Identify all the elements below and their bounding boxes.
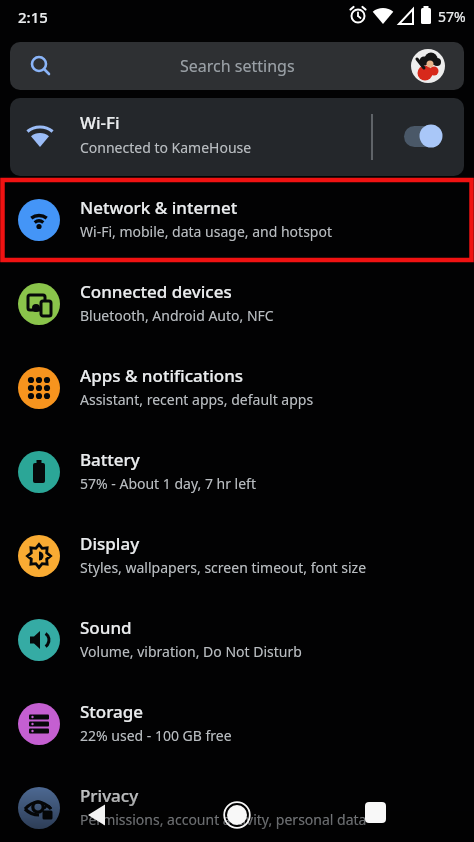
button[interactable]: Apps & notifications [0, 346, 474, 430]
staticText: Apps & notifications [80, 364, 244, 387]
staticText: Connected devices [80, 280, 232, 303]
button[interactable]: Wi-Fi [10, 98, 464, 176]
staticText: 57% - About 1 day, 7 hr left [80, 474, 256, 493]
button[interactable] [197, 785, 277, 842]
staticText: Search settings [180, 55, 295, 77]
staticText: Storage [80, 700, 144, 723]
staticText: Volume, vibration, Do Not Disturb [80, 642, 302, 661]
staticText: Assistant, recent apps, default apps [80, 390, 314, 409]
staticText: Battery [80, 448, 140, 471]
button[interactable] [60, 785, 140, 842]
staticText: Sound [80, 616, 132, 639]
button[interactable]: Storage [0, 682, 474, 766]
staticText: Network & internet [80, 196, 238, 219]
staticText: 2:15 [18, 7, 48, 27]
button[interactable]: Network & internet [0, 178, 474, 262]
button[interactable]: Connected devices [0, 262, 474, 346]
staticText: Wi-Fi, mobile, data usage, and hotspot [80, 222, 332, 241]
button[interactable]: Battery [0, 430, 474, 514]
button[interactable]: Privacy [0, 766, 474, 842]
staticText: Bluetooth, Android Auto, NFC [80, 306, 274, 325]
staticText: Wi-Fi [80, 111, 120, 134]
staticText: Display [80, 532, 140, 555]
staticText: Connected to KameHouse [80, 138, 252, 157]
staticText: 57% [438, 7, 466, 26]
button[interactable]: Display [0, 514, 474, 598]
button[interactable] [335, 785, 415, 842]
staticText: Styles, wallpapers, screen timeout, font… [80, 558, 367, 577]
staticText: Privacy [80, 784, 139, 807]
staticText: Permissions, account activity, personal … [80, 810, 367, 829]
staticText: 22% used - 100 GB free [80, 726, 232, 745]
button[interactable]: Sound [0, 598, 474, 682]
button[interactable]: Search settings [10, 42, 464, 90]
